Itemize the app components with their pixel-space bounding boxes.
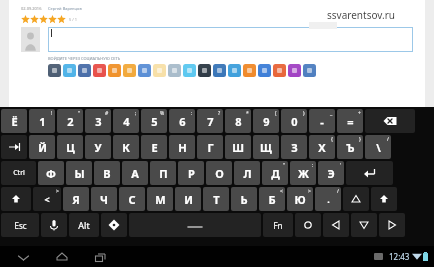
button[interactable]: Ъ (337, 135, 363, 159)
button[interactable]: Ш (225, 135, 251, 159)
button[interactable]: Social login (63, 64, 76, 77)
staticText: " (78, 110, 81, 117)
button[interactable]: Backspace (365, 109, 415, 133)
button[interactable]: Voice input (41, 213, 67, 237)
button[interactable]: Сергей Варенцов (48, 6, 82, 11)
button[interactable]: В (94, 161, 120, 185)
button[interactable]: Ь (231, 187, 257, 211)
button[interactable]: Social login (198, 64, 211, 77)
button[interactable]: Social login (93, 64, 106, 77)
button[interactable]: Ё (1, 109, 27, 133)
staticText: > (308, 188, 311, 195)
button[interactable]: Ц (57, 135, 83, 159)
button[interactable]: - (309, 109, 335, 133)
button[interactable]: Х (309, 135, 335, 159)
button[interactable]: Social login (183, 64, 196, 77)
button[interactable]: Move (101, 213, 127, 237)
button[interactable]: Social login (228, 64, 241, 77)
button[interactable]: \ (365, 135, 391, 159)
button[interactable]: Social login (303, 64, 316, 77)
button[interactable]: О (206, 161, 232, 185)
button[interactable]: Esc (1, 213, 39, 237)
button[interactable]: Ф (38, 161, 64, 185)
button[interactable]: Social login (153, 64, 166, 77)
button[interactable]: Г (197, 135, 223, 159)
button[interactable]: 8 (225, 109, 251, 133)
button[interactable]: И (175, 187, 201, 211)
staticText: 2 (67, 114, 74, 129)
button[interactable]: М (147, 187, 173, 211)
staticText: } (359, 136, 361, 143)
button[interactable]: . (315, 187, 341, 211)
button[interactable]: С (119, 187, 145, 211)
button[interactable]: П (150, 161, 176, 185)
button[interactable]: А (122, 161, 148, 185)
button[interactable]: Я (63, 187, 89, 211)
button[interactable]: Shift (371, 187, 397, 211)
staticText: 9 (263, 114, 270, 129)
button[interactable]: Д (262, 161, 288, 185)
button[interactable]: К (113, 135, 139, 159)
button[interactable]: Social login (138, 64, 151, 77)
button[interactable]: 4 (113, 109, 139, 133)
staticText: Ш (232, 140, 244, 155)
button[interactable]: Щ (253, 135, 279, 159)
staticText: / (337, 188, 339, 195)
button[interactable]: Social login (213, 64, 226, 77)
staticText: " (283, 162, 286, 169)
button[interactable]: Т (203, 187, 229, 211)
button[interactable]: Social login (168, 64, 181, 77)
button[interactable]: Social login (78, 64, 91, 77)
button[interactable]: Home (50, 249, 74, 265)
button[interactable]: < (33, 187, 61, 211)
button[interactable]: Е (141, 135, 167, 159)
button[interactable]: 0 (281, 109, 307, 133)
button[interactable]: Й (29, 135, 55, 159)
button[interactable]: Recents (88, 249, 112, 265)
button[interactable]: Social login (108, 64, 121, 77)
button[interactable]: Б (259, 187, 285, 211)
button[interactable]: Down (351, 213, 377, 237)
button[interactable]: Alt (69, 213, 99, 237)
button[interactable]: Enter (346, 161, 393, 185)
button[interactable]: Ы (66, 161, 92, 185)
button[interactable]: Up (343, 187, 369, 211)
staticText: > (56, 188, 59, 195)
button[interactable]: 5 (141, 109, 167, 133)
button[interactable]: Hide keyboard (10, 249, 36, 265)
button[interactable]: Social login (48, 64, 61, 77)
button[interactable]: З (281, 135, 307, 159)
button[interactable]: Э (318, 161, 344, 185)
button[interactable] (48, 27, 413, 52)
button[interactable]: 6 (169, 109, 195, 133)
button[interactable]: Ж (290, 161, 316, 185)
button[interactable]: Left (323, 213, 349, 237)
button[interactable]: Tab (1, 135, 27, 159)
button[interactable]: Shift (1, 187, 31, 211)
button[interactable]: 7 (197, 109, 223, 133)
button[interactable]: Right (379, 213, 405, 237)
button[interactable]: Ю (287, 187, 313, 211)
button[interactable]: 1 (29, 109, 55, 133)
button[interactable]: Options (295, 213, 321, 237)
button[interactable]: Ctrl (1, 161, 36, 185)
button[interactable]: Л (234, 161, 260, 185)
button[interactable]: Fn (263, 213, 293, 237)
button[interactable]: 9 (253, 109, 279, 133)
button[interactable]: Social login (288, 64, 301, 77)
staticText: 0 (291, 114, 298, 129)
button[interactable]: Ч (91, 187, 117, 211)
button[interactable]: Social login (273, 64, 286, 77)
button[interactable]: = (337, 109, 363, 133)
button[interactable]: 3 (85, 109, 111, 133)
button[interactable]: Social login (258, 64, 271, 77)
button[interactable]: У (85, 135, 111, 159)
button[interactable]: Space (129, 213, 261, 237)
button[interactable]: Social login (123, 64, 136, 77)
button[interactable]: 2 (57, 109, 83, 133)
staticText: < (44, 193, 50, 205)
button[interactable]: Р (178, 161, 204, 185)
button[interactable]: Н (169, 135, 195, 159)
button[interactable]: Social login (243, 64, 256, 77)
